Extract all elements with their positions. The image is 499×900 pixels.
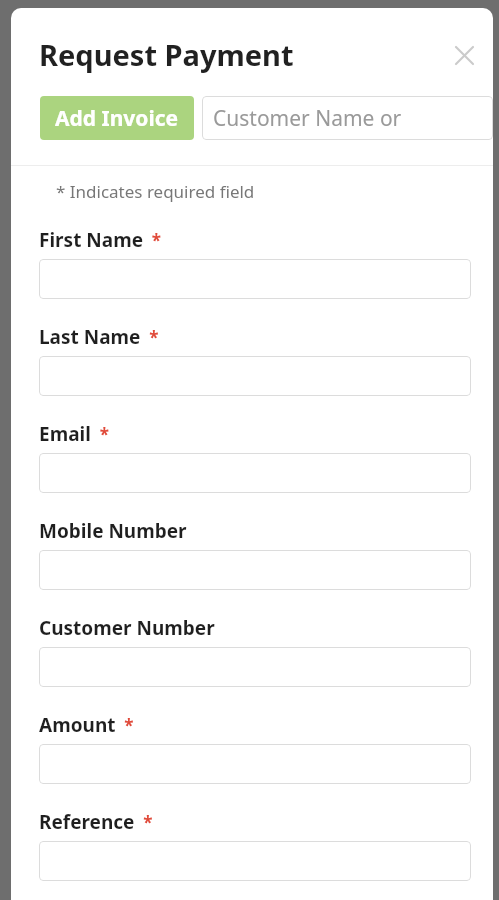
button[interactable]: Email [39,453,471,493]
button[interactable]: Reference [39,841,471,881]
staticText: * Indicates required field [56,180,255,203]
button[interactable]: Customer Number [39,647,471,687]
button[interactable]: Mobile Number [39,550,471,590]
button[interactable]: Last Name [39,356,471,396]
staticText: Last Name * [39,324,159,350]
staticText: Add Invoice [55,104,179,133]
staticText: Mobile Number [39,518,187,544]
button[interactable]: First Name [39,259,471,299]
staticText: Request Payment [39,35,294,74]
staticText: First Name * [39,227,162,253]
staticText: Customer Name or Number... [213,104,493,133]
staticText: Customer Number [39,615,215,641]
staticText: Amount * [39,712,134,738]
button[interactable]: Close [445,36,483,74]
button[interactable]: Customer Name or Number... [202,96,493,140]
button[interactable]: Amount [39,744,471,784]
staticText: Reference * [39,809,153,835]
button[interactable]: Add Invoice [40,96,194,140]
staticText: Email * [39,421,109,447]
